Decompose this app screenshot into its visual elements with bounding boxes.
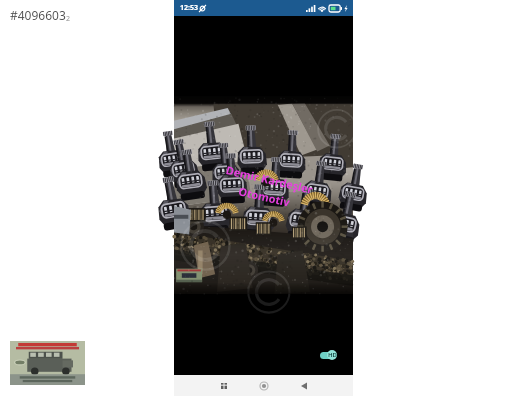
staticText: #4096603 <box>10 7 66 23</box>
button[interactable]: Back <box>288 375 319 396</box>
staticText: Demir Kardeşler <box>224 162 315 197</box>
button[interactable]: Recents <box>208 375 239 396</box>
staticText: 12:53 <box>180 3 198 13</box>
button[interactable]: Listing photo <box>10 341 85 385</box>
button[interactable]: Home <box>248 375 279 396</box>
staticText: Otomotiv <box>237 183 292 210</box>
staticText: HD <box>328 351 337 359</box>
staticText: 2 <box>66 14 71 24</box>
button[interactable]: Toggle HD quality <box>320 348 344 362</box>
